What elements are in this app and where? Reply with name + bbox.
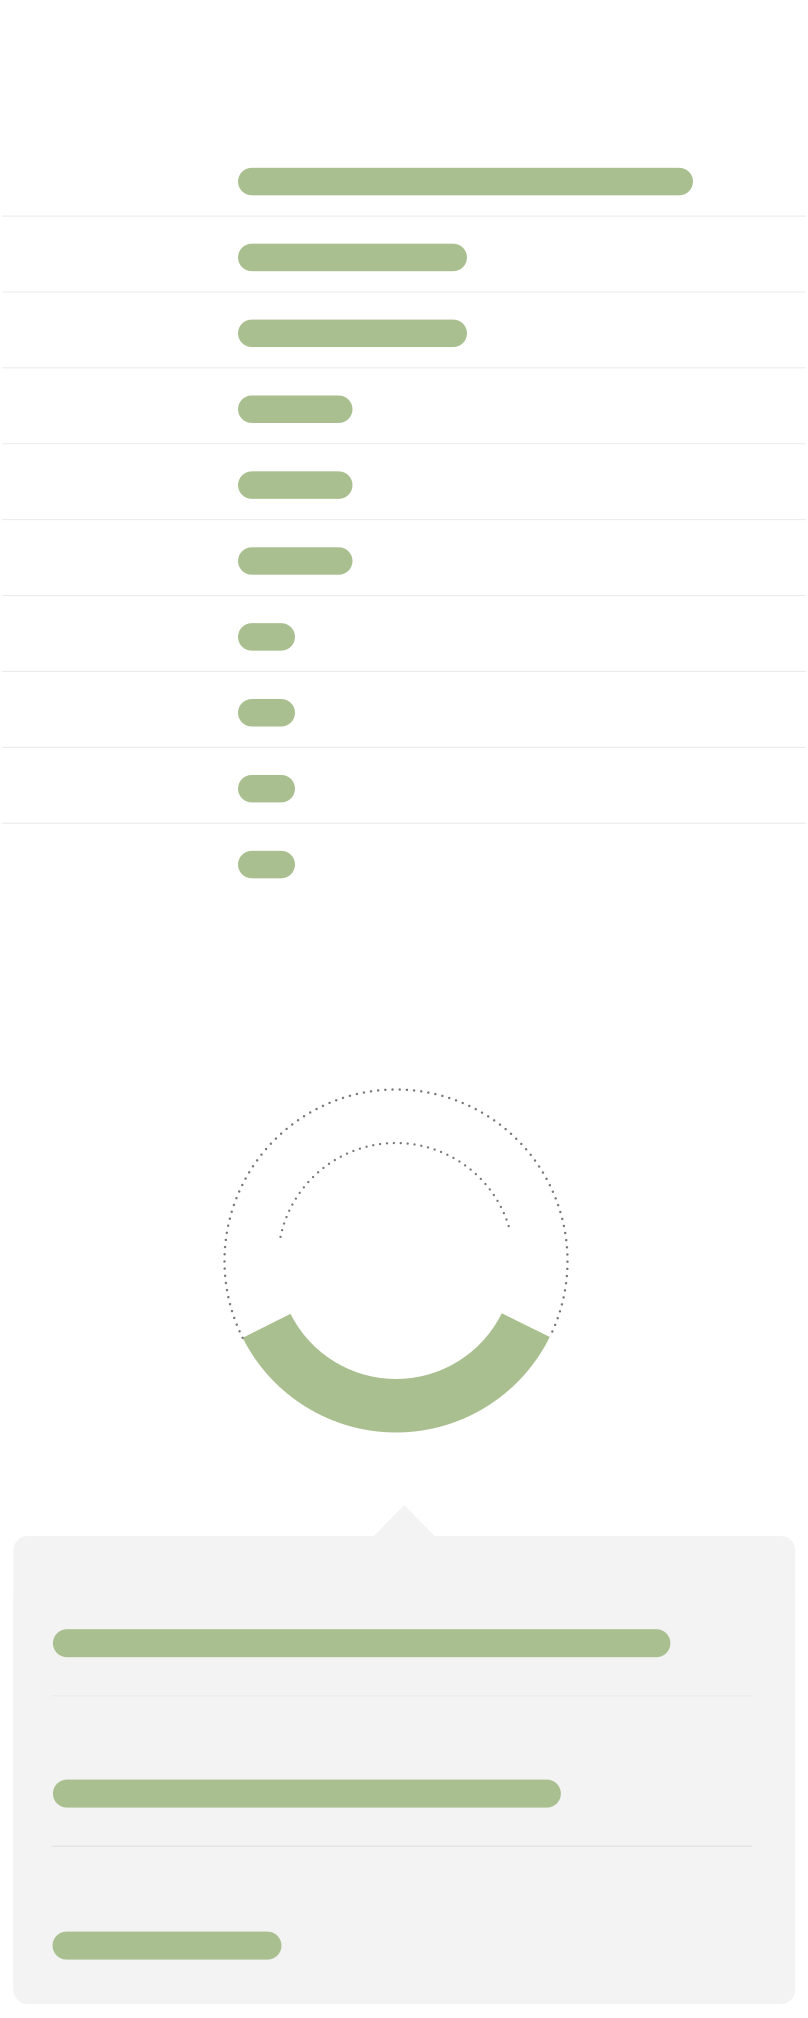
button[interactable]: Loading item 5 (0, 444, 808, 520)
button[interactable]: Loading detail 1 (13, 1597, 795, 1696)
button[interactable]: Loading item 3 (0, 293, 808, 368)
button[interactable]: Loading detail 2 (13, 1696, 795, 1848)
button[interactable]: Loading item 2 (0, 217, 808, 293)
button[interactable]: Loading item 8 (0, 672, 808, 748)
button[interactable]: Loading item 4 (0, 368, 808, 444)
button[interactable]: Loading item 1 (0, 141, 808, 217)
button[interactable]: Loading item 10 (0, 824, 808, 900)
button[interactable]: Loading item 7 (0, 596, 808, 672)
button[interactable]: Loading item 6 (0, 520, 808, 596)
button[interactable]: Loading item 9 (0, 748, 808, 824)
button[interactable]: Loading detail 3 (13, 1848, 795, 1989)
